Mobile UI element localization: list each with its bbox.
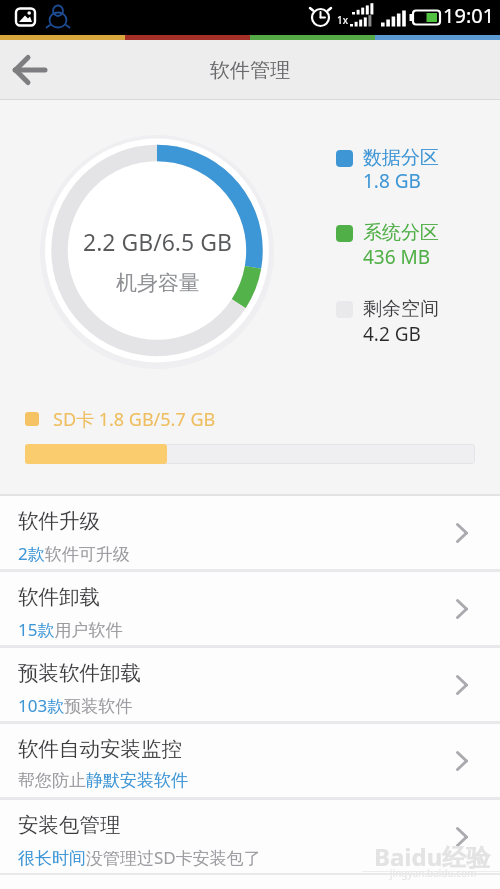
staticText: 软件升级 bbox=[18, 508, 100, 534]
button[interactable] bbox=[0, 40, 60, 100]
staticText: 机身容量 bbox=[116, 270, 200, 296]
button[interactable]: 软件升级 bbox=[0, 496, 500, 569]
staticText: 软件卸载 bbox=[18, 584, 100, 610]
staticText: 剩余空间 bbox=[363, 297, 439, 321]
button[interactable]: 软件自动安装监控 bbox=[0, 724, 500, 797]
staticText: Baidu经验 bbox=[374, 840, 491, 873]
staticText: 19:01 bbox=[443, 2, 495, 29]
button[interactable]: 安装包管理 bbox=[0, 800, 500, 873]
staticText: jingyan.baidu.com bbox=[390, 866, 477, 880]
staticText: 数据分区 bbox=[363, 146, 439, 170]
staticText: 436 MB bbox=[363, 244, 431, 270]
staticText: 103款预装软件 bbox=[18, 694, 133, 717]
staticText: 预装软件卸载 bbox=[18, 660, 141, 686]
staticText: 帮您防止静默安装软件 bbox=[18, 770, 188, 791]
staticText: 4.2 GB bbox=[363, 321, 421, 347]
button[interactable]: 软件卸载 bbox=[0, 572, 500, 645]
staticText: 1x bbox=[337, 13, 349, 27]
staticText: 2.2 GB/6.5 GB bbox=[83, 226, 232, 257]
staticText: 系统分区 bbox=[363, 221, 439, 245]
button[interactable]: 预装软件卸载 bbox=[0, 648, 500, 721]
staticText: 1.8 GB bbox=[363, 168, 421, 194]
staticText: SD卡 1.8 GB/5.7 GB bbox=[53, 407, 216, 432]
staticText: 很长时间没管理过SD卡安装包了 bbox=[18, 846, 261, 869]
staticText: 2款软件可升级 bbox=[18, 542, 130, 565]
staticText: 15款用户软件 bbox=[18, 618, 123, 641]
staticText: 安装包管理 bbox=[18, 812, 121, 838]
staticText: 软件自动安装监控 bbox=[18, 736, 182, 762]
staticText: 软件管理 bbox=[210, 58, 290, 83]
